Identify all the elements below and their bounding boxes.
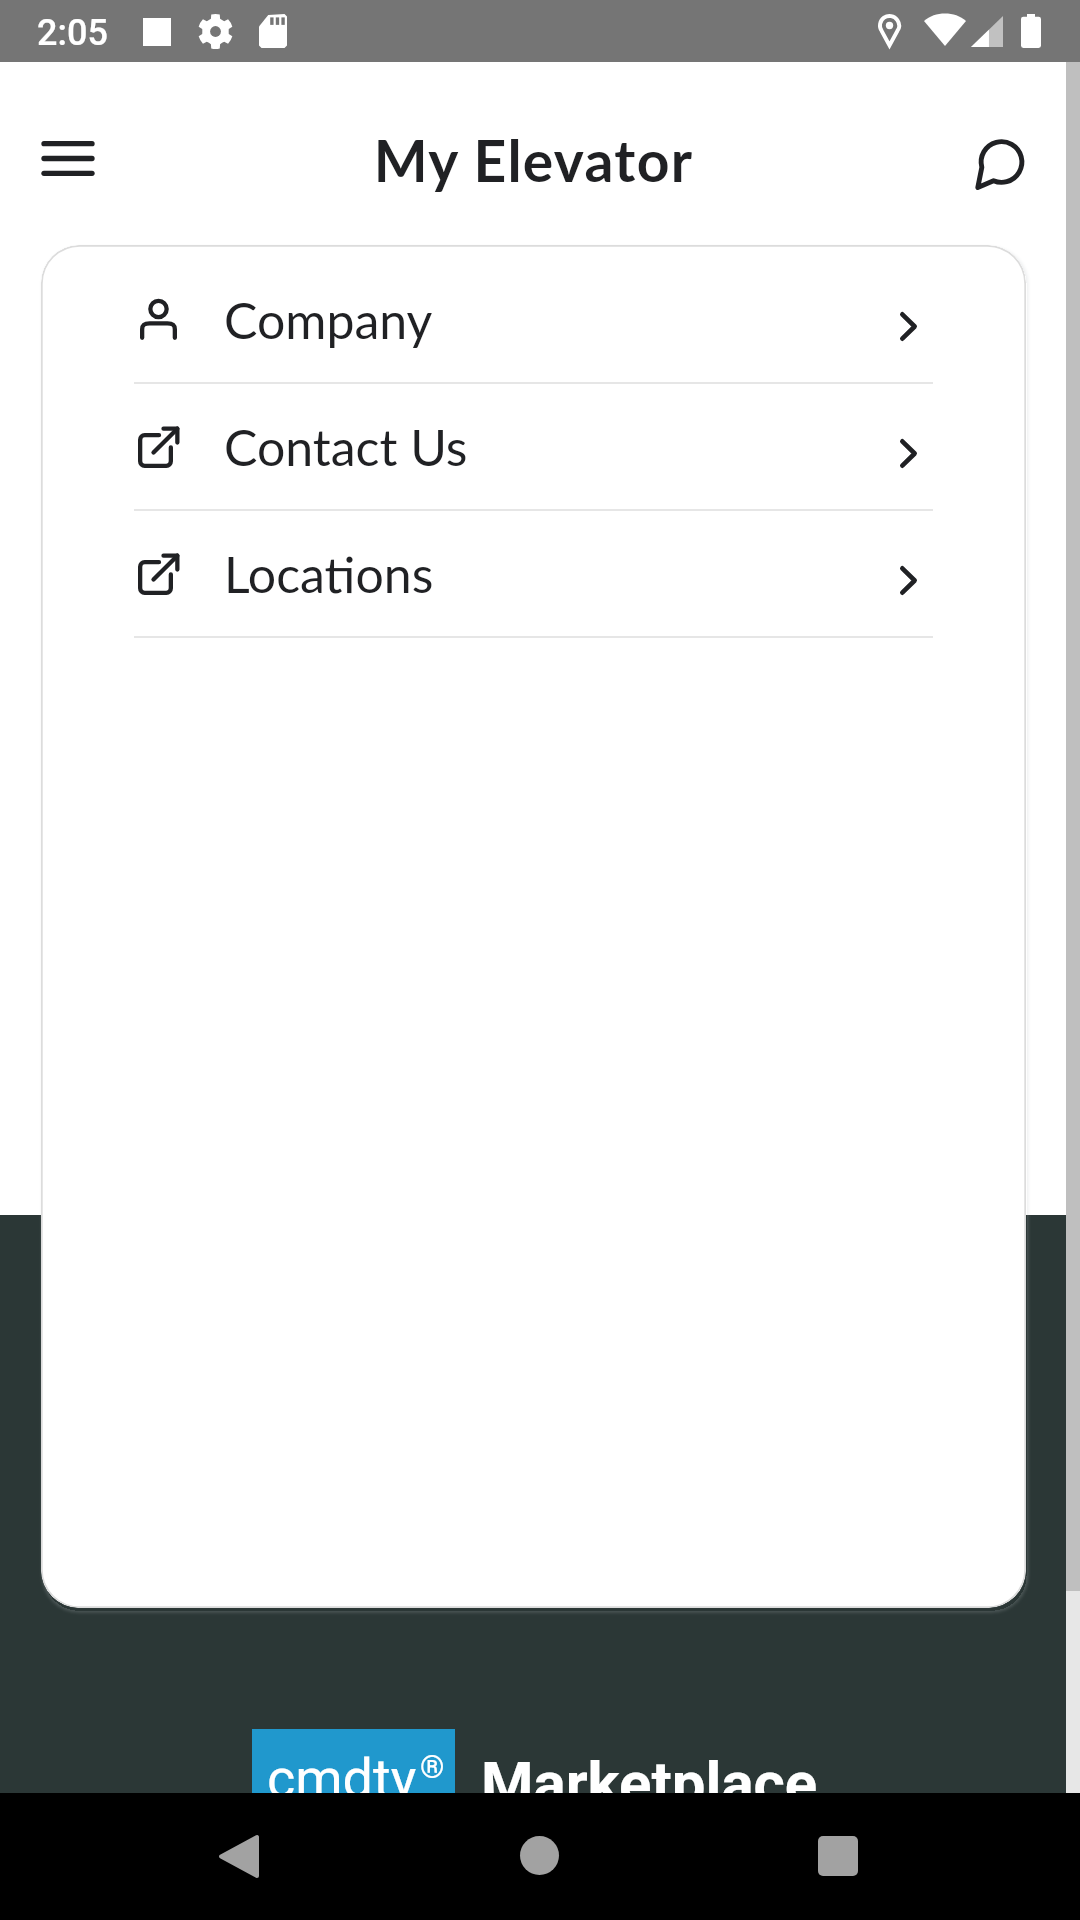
button[interactable]: cmdty bbox=[240, 1700, 840, 1793]
button[interactable]: Locations bbox=[41, 511, 1026, 638]
button[interactable]: Recent apps bbox=[788, 1806, 888, 1906]
button[interactable]: Home bbox=[489, 1806, 589, 1906]
staticText: Marketplace bbox=[481, 1748, 818, 1818]
staticText: cmdty bbox=[267, 1747, 417, 1810]
button[interactable]: Messages bbox=[952, 114, 1048, 210]
staticText: Contact Us bbox=[224, 417, 468, 477]
button[interactable]: Back bbox=[188, 1806, 288, 1906]
button[interactable]: Company bbox=[41, 257, 1026, 384]
button[interactable]: Contact Us bbox=[41, 384, 1026, 511]
button[interactable]: Open navigation menu bbox=[20, 109, 116, 205]
staticText: 2:05 bbox=[37, 12, 108, 54]
staticText: ® bbox=[420, 1749, 445, 1785]
staticText: Locations bbox=[224, 544, 434, 604]
staticText: Company bbox=[224, 290, 433, 350]
staticText: My Elevator bbox=[0, 126, 1067, 194]
